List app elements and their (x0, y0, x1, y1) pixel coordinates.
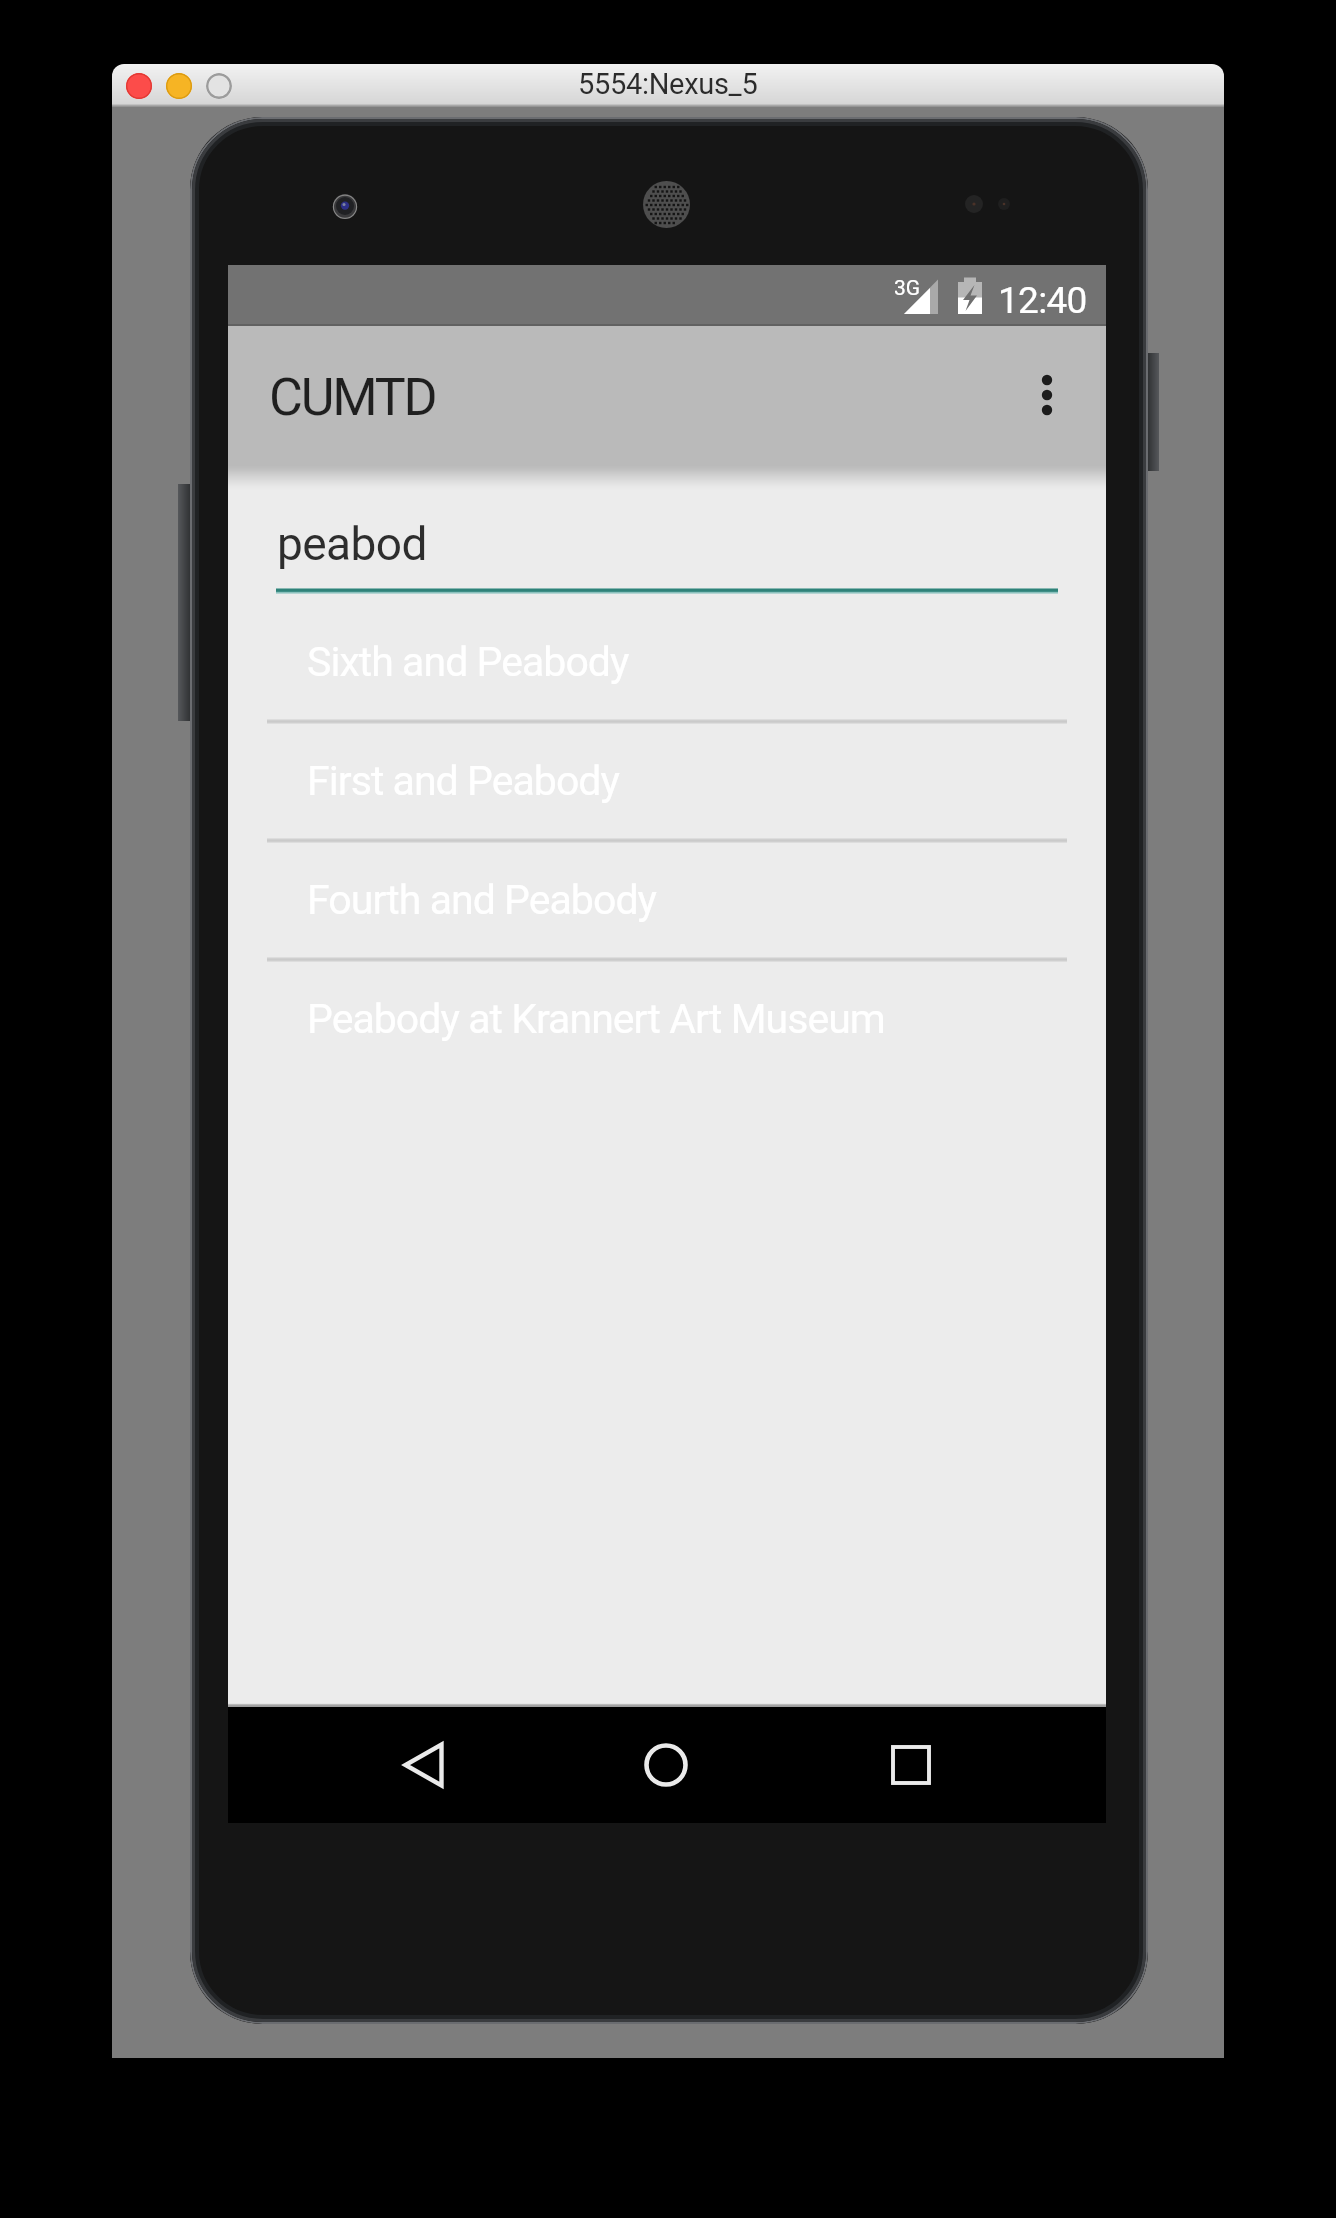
staticText: First and Peabody (307, 757, 619, 805)
button[interactable]: Close (126, 73, 152, 99)
button[interactable]: Recent apps (851, 1715, 971, 1815)
button[interactable]: Minimise (166, 73, 192, 99)
button[interactable]: Peabody at Krannert Art Museum (228, 958, 1106, 1077)
button[interactable]: Fourth and Peabody (228, 839, 1106, 958)
button[interactable]: Back (363, 1715, 483, 1815)
staticText: 5554:Nexus_5 (578, 67, 758, 101)
button[interactable]: Sixth and Peabody (228, 601, 1106, 720)
button[interactable]: Home (606, 1715, 726, 1815)
staticText: Fourth and Peabody (307, 876, 656, 924)
staticText: CUMTD (269, 367, 436, 428)
staticText: peabod (277, 517, 427, 571)
button[interactable]: First and Peabody (228, 720, 1106, 839)
staticText: 12:40 (998, 279, 1087, 322)
staticText: Sixth and Peabody (307, 638, 629, 686)
staticText: Peabody at Krannert Art Museum (307, 995, 885, 1043)
button[interactable]: More options (999, 352, 1095, 448)
button[interactable]: peabod (276, 501, 1058, 594)
button[interactable]: Zoom (206, 73, 232, 99)
staticText: 3G (894, 276, 921, 301)
